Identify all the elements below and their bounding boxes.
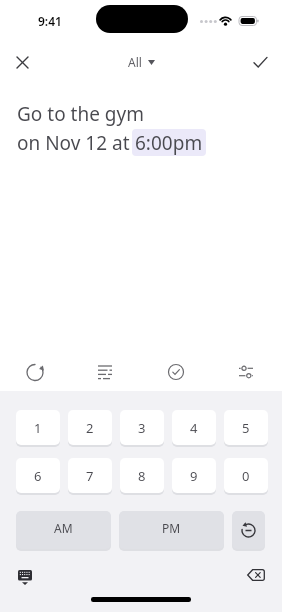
staticText: 1 [34, 419, 42, 437]
button[interactable] [8, 48, 36, 76]
staticText: on Nov 12 at [17, 130, 130, 156]
staticText: 0 [242, 467, 250, 485]
staticText: 6 [34, 467, 42, 485]
staticText: 3 [138, 419, 146, 437]
button[interactable]: 6 [16, 458, 60, 493]
staticText: AM [54, 520, 73, 536]
staticText: 9:41 [38, 13, 62, 29]
button[interactable] [232, 511, 265, 549]
staticText: Go to the gym [17, 101, 144, 127]
button[interactable]: 8 [120, 458, 164, 493]
button[interactable]: 3 [120, 410, 164, 445]
staticText: 9 [190, 467, 198, 485]
staticText: 7 [86, 467, 94, 485]
button[interactable]: 0 [224, 458, 268, 493]
button[interactable]: 9 [172, 458, 216, 493]
button[interactable]: 7 [68, 458, 112, 493]
button[interactable]: All [120, 48, 163, 76]
staticText: All [128, 54, 142, 70]
button[interactable] [8, 561, 42, 593]
button[interactable] [81, 348, 129, 396]
staticText: 4 [190, 419, 198, 437]
button[interactable] [238, 561, 274, 589]
button[interactable]: 4 [172, 410, 216, 445]
staticText: 6:00pm [135, 130, 203, 156]
button[interactable] [222, 348, 270, 396]
button[interactable]: AM [16, 511, 111, 549]
staticText: 2 [86, 419, 94, 437]
button[interactable]: 2 [68, 410, 112, 445]
button[interactable]: 1 [16, 410, 60, 445]
button[interactable]: 5 [224, 410, 268, 445]
button[interactable] [246, 48, 274, 76]
button[interactable] [11, 348, 59, 396]
button[interactable] [152, 348, 200, 396]
staticText: 8 [138, 467, 146, 485]
staticText: 5 [242, 419, 250, 437]
button[interactable]: PM [119, 511, 224, 549]
staticText: PM [162, 520, 181, 536]
